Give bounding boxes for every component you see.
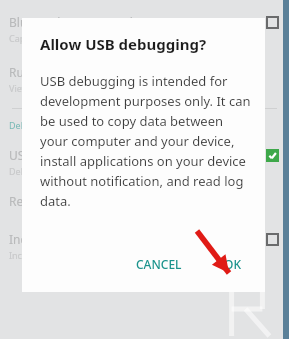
staticText: Allow USB debugging?	[40, 34, 207, 54]
staticText: Include bug reports in power menu	[9, 231, 209, 247]
button[interactable]: Bluetooth HCI snoop log	[0, 14, 289, 44]
staticText: Debugging	[9, 119, 57, 131]
button[interactable]: OK	[214, 250, 251, 278]
staticText: Running services	[9, 64, 105, 80]
button[interactable]: Include bug reports in power menu	[0, 231, 289, 261]
staticText: Include option in power menu for taking …	[9, 249, 236, 261]
staticText: Bluetooth HCI snoop log	[9, 14, 148, 30]
staticText: OK	[224, 256, 241, 272]
staticText: USB debugging	[9, 147, 97, 163]
staticText: View and control currently running servi…	[9, 82, 192, 94]
button[interactable]: Running services	[0, 64, 289, 94]
button[interactable]: USB debugging	[0, 147, 289, 177]
staticText: Revoke USB debugging authorizations	[9, 193, 226, 209]
staticText: USB debugging is intended for developmen…	[40, 72, 251, 210]
other: Toggle USB debugging	[266, 149, 279, 162]
other: Toggle Include bug reports in power menu	[266, 233, 279, 246]
button[interactable]: CANCEL	[126, 250, 192, 278]
staticText: CANCEL	[136, 256, 182, 272]
button[interactable]: Revoke USB debugging authorizations	[0, 193, 289, 209]
other: Toggle Bluetooth HCI snoop log	[266, 16, 279, 29]
staticText: Capture all bluetooth HCI packets in a f…	[9, 32, 184, 44]
staticText: Debug mode when USB is connected	[9, 165, 165, 177]
